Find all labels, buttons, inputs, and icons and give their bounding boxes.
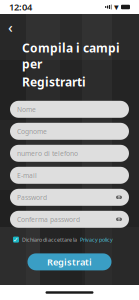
staticText: 12:04 [9, 1, 32, 13]
staticText: Privacy policy [80, 236, 113, 243]
staticText: Password [17, 193, 47, 202]
staticText: Compila i campi per [22, 40, 120, 72]
button[interactable]: ✓ [0, 236, 139, 243]
staticText: Conferma password [17, 215, 80, 224]
staticText: ▾ [114, 2, 119, 12]
staticText: Cognome [17, 127, 47, 136]
staticText: ✓ [13, 236, 19, 243]
staticText: Nome [17, 105, 36, 114]
button[interactable]: Conferma password [10, 211, 129, 228]
staticText: numero di telefono [17, 149, 78, 158]
staticText: Registrarti [22, 74, 86, 90]
button[interactable]: Nome [10, 101, 129, 118]
button[interactable]: Back [0, 20, 24, 34]
button[interactable]: Password [10, 189, 129, 206]
button[interactable]: Cognome [10, 123, 129, 140]
button[interactable]: Registrati [27, 253, 111, 270]
staticText: Registrati [47, 256, 92, 268]
staticText: ‹ [8, 17, 13, 37]
button[interactable]: E-mail [10, 167, 129, 184]
button[interactable]: numero di telefono [10, 145, 129, 162]
staticText: Dichiaro di accettare la [22, 236, 77, 243]
staticText: E-mail [17, 171, 37, 180]
